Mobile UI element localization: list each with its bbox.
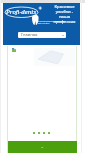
staticText: Profi-dents <box>6 8 37 16</box>
button[interactable]: ··· <box>8 141 77 153</box>
button[interactable]: Главная <box>18 32 66 38</box>
staticText: Красивые улыбки - наша профессия <box>53 4 76 24</box>
staticText: СТОМАТОЛОГИЧЕСКАЯ КЛИНИКА <box>38 19 65 25</box>
staticText: Главная <box>21 32 38 38</box>
staticText: ··· <box>41 146 44 150</box>
